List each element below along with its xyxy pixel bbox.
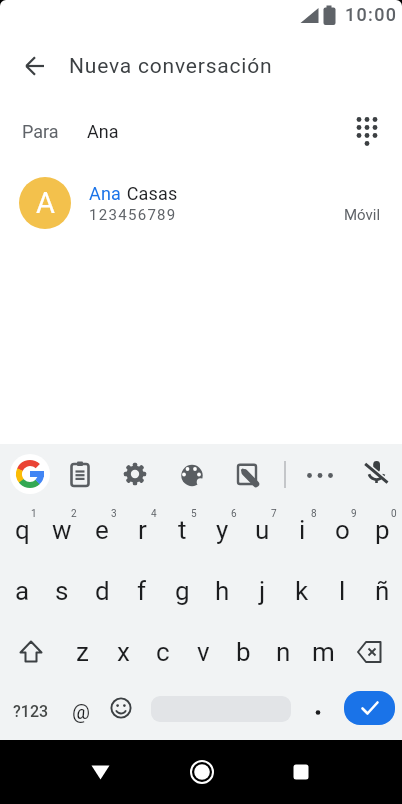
staticText: v [197, 637, 210, 667]
staticText: i [299, 515, 306, 545]
button[interactable]: i [282, 499, 322, 560]
staticText: ñ [375, 576, 390, 606]
staticText: c [156, 637, 170, 667]
button[interactable] [100, 682, 142, 740]
button[interactable] [298, 444, 342, 499]
staticText: m [312, 637, 335, 667]
staticText: Para [22, 121, 59, 142]
button[interactable]: y [202, 499, 242, 560]
staticText: 6 [231, 508, 237, 520]
button[interactable] [170, 444, 214, 499]
button[interactable] [15, 46, 55, 86]
staticText: 9 [351, 508, 357, 520]
button[interactable] [113, 444, 157, 499]
button[interactable]: d [82, 560, 122, 621]
staticText: @ [72, 700, 90, 723]
button[interactable]: g [162, 560, 202, 621]
staticText: A [36, 186, 55, 220]
staticText: 7 [271, 508, 277, 520]
staticText: w [52, 515, 72, 545]
button[interactable]: @ [62, 682, 100, 740]
button[interactable] [344, 691, 395, 725]
button[interactable]: p [362, 499, 402, 560]
button[interactable] [0, 621, 62, 682]
staticText: 4 [151, 508, 157, 520]
staticText: Nueva conversación [69, 54, 273, 79]
staticText: 5 [191, 508, 197, 520]
staticText: b [236, 637, 251, 667]
staticText: g [175, 576, 190, 606]
staticText: l [339, 576, 346, 606]
button[interactable]: A [0, 170, 402, 236]
staticText: e [95, 515, 109, 545]
staticText: 0 [391, 508, 397, 520]
button[interactable]: s [42, 560, 82, 621]
staticText: s [55, 576, 69, 606]
button[interactable]: a [2, 560, 42, 621]
staticText: x [117, 637, 130, 667]
button[interactable] [225, 444, 269, 499]
button[interactable]: ñ [362, 560, 402, 621]
button[interactable] [300, 682, 336, 740]
staticText: a [15, 576, 30, 606]
button[interactable]: r [122, 499, 162, 560]
button[interactable] [277, 740, 325, 804]
staticText: o [335, 515, 350, 545]
button[interactable]: w [42, 499, 82, 560]
staticText: r [138, 515, 147, 545]
staticText: 3 [111, 508, 117, 520]
staticText: Casas [122, 183, 178, 204]
button[interactable]: l [322, 560, 362, 621]
button[interactable]: n [263, 621, 303, 682]
button[interactable]: ?123 [0, 682, 62, 740]
staticText: 123456789 [89, 206, 177, 224]
button[interactable]: k [282, 560, 322, 621]
button[interactable]: o [322, 499, 362, 560]
staticText: y [216, 515, 229, 545]
button[interactable]: f [122, 560, 162, 621]
staticText: j [259, 576, 266, 606]
button[interactable]: x [103, 621, 143, 682]
button[interactable] [58, 444, 102, 499]
staticText: k [295, 576, 309, 606]
button[interactable]: t [162, 499, 202, 560]
button[interactable] [343, 621, 402, 682]
button[interactable]: z [62, 621, 103, 682]
button[interactable] [76, 740, 124, 804]
staticText: n [276, 637, 291, 667]
staticText: t [178, 515, 187, 545]
button[interactable]: b [223, 621, 263, 682]
button[interactable]: j [242, 560, 282, 621]
button[interactable]: h [202, 560, 242, 621]
button[interactable]: u [242, 499, 282, 560]
button[interactable]: e [82, 499, 122, 560]
staticText: f [137, 576, 147, 606]
button[interactable] [178, 740, 226, 804]
staticText: d [95, 576, 110, 606]
button[interactable]: v [183, 621, 223, 682]
staticText: 1 [31, 508, 37, 520]
staticText: 2 [71, 508, 77, 520]
button[interactable]: m [303, 621, 343, 682]
button[interactable] [343, 107, 391, 155]
staticText: h [215, 576, 230, 606]
button[interactable] [8, 444, 52, 499]
button[interactable]: q [2, 499, 42, 560]
staticText: q [15, 515, 30, 545]
staticText: u [255, 515, 270, 545]
staticText: Móvil [344, 206, 381, 224]
staticText: z [76, 637, 89, 667]
staticText: p [375, 515, 390, 545]
staticText: 10:00 [345, 4, 398, 25]
button[interactable] [354, 444, 398, 499]
staticText: ?123 [13, 702, 49, 721]
staticText: 8 [311, 508, 317, 520]
button[interactable]: c [143, 621, 183, 682]
staticText: Ana [89, 183, 122, 204]
staticText: Ana [87, 121, 119, 142]
